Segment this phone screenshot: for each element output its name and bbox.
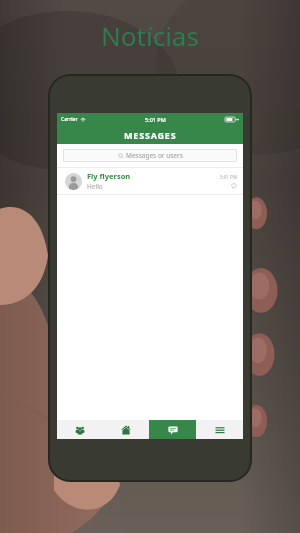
button[interactable]: Messages [149, 420, 196, 439]
button[interactable]: Fly flyerson [57, 168, 243, 194]
staticText: MESSAGES [124, 129, 177, 141]
button[interactable]: Messages or users [63, 149, 237, 162]
staticText: Hello [87, 182, 103, 191]
button[interactable]: Contacts [57, 420, 103, 439]
staticText: 5:01 PM [220, 174, 237, 180]
staticText: Carrier [61, 116, 78, 123]
button[interactable]: Menu [196, 420, 243, 439]
staticText: Messages or users [126, 151, 183, 160]
staticText: Notícias [0, 18, 300, 53]
button[interactable]: Home [103, 420, 149, 439]
staticText: Fly flyerson [87, 171, 131, 181]
staticText: 5:01 PM [145, 116, 166, 123]
